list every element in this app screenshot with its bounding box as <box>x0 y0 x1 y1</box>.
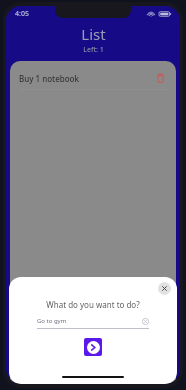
button[interactable]: Submit <box>84 338 102 356</box>
button[interactable]: Close <box>158 282 171 295</box>
staticText: What do you want to do? <box>46 299 140 310</box>
button[interactable]: Buy 1 notebook <box>10 67 176 89</box>
staticText: Buy 1 notebook <box>19 73 79 84</box>
staticText: List <box>81 24 106 44</box>
staticText: Go to gym <box>37 317 67 325</box>
button[interactable]: Clear text <box>142 318 149 325</box>
button[interactable]: Go to gym <box>37 317 149 329</box>
staticText: 4:05 <box>15 9 29 19</box>
staticText: Left: 1 <box>83 45 104 55</box>
button[interactable]: Delete item <box>153 71 167 85</box>
